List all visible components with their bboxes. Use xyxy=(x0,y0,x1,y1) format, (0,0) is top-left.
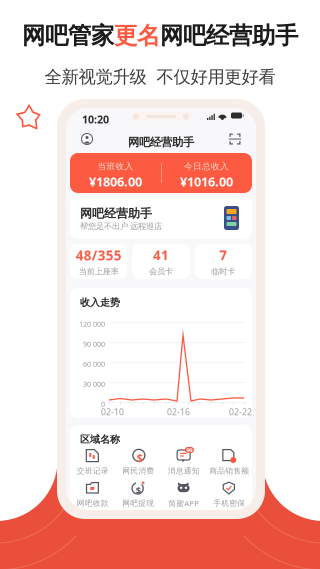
button[interactable]: $ xyxy=(115,449,161,476)
staticText: 区域名称 xyxy=(80,433,120,446)
staticText: 网吧提现 xyxy=(122,498,154,508)
button[interactable]: 商品销售额 xyxy=(206,449,252,476)
staticText: 10:20 xyxy=(82,112,109,126)
button[interactable]: 账户 xyxy=(74,126,100,152)
staticText: 简蜜APP xyxy=(168,498,199,508)
staticText: 当前上座率 xyxy=(79,266,119,277)
staticText: ¥1806.00 xyxy=(89,173,142,190)
button[interactable]: 网吧收款 xyxy=(70,481,115,508)
staticText: 7 xyxy=(219,246,227,264)
button[interactable]: 7 xyxy=(195,244,252,279)
button[interactable]: 交班记录 xyxy=(70,449,115,476)
staticText: $ xyxy=(136,484,141,497)
staticText: 更名 xyxy=(114,21,160,50)
staticText: 手机密保 xyxy=(213,498,245,508)
staticText: 网民消费 xyxy=(122,466,154,476)
button[interactable]: 手机密保 xyxy=(206,481,252,508)
staticText: 帮您足不出户 远程巡店 xyxy=(80,221,162,231)
staticText: 02-16 xyxy=(167,406,190,418)
button[interactable]: 简蜜APP xyxy=(161,481,206,508)
button[interactable]: 99 xyxy=(161,449,206,476)
staticText: 网吧经营助手 xyxy=(128,135,194,149)
staticText: 48/355 xyxy=(76,246,122,264)
staticText: 网吧管家 xyxy=(22,21,114,50)
staticText: 60 000 xyxy=(83,359,105,369)
staticText: 02-22 xyxy=(229,406,252,418)
staticText: 当班收入 xyxy=(97,161,133,172)
staticText: 30 000 xyxy=(83,379,105,389)
staticText: 120 000 xyxy=(79,319,105,329)
staticText: 网吧经营助手 xyxy=(80,206,152,221)
staticText: 0 xyxy=(101,399,105,409)
staticText: 消息通知 xyxy=(168,466,200,476)
staticText: 今日总收入 xyxy=(184,161,229,172)
staticText: 临时卡 xyxy=(211,266,235,277)
staticText: 41 xyxy=(153,246,169,264)
button[interactable]: 扫一扫 xyxy=(222,126,248,152)
staticText: 全新视觉升级 不仅好用更好看 xyxy=(44,66,275,88)
staticText: 商品销售额 xyxy=(209,466,249,476)
button[interactable]: $ xyxy=(115,481,161,508)
staticText: 收入走势 xyxy=(80,296,120,309)
staticText: 02-10 xyxy=(101,406,124,418)
staticText: 网吧经营助手 xyxy=(160,21,298,50)
staticText: 网吧收款 xyxy=(77,498,109,508)
button[interactable]: 41 xyxy=(132,244,190,279)
staticText: 交班记录 xyxy=(77,466,109,476)
staticText: ¥1016.00 xyxy=(180,173,233,190)
staticText: $ xyxy=(137,450,143,465)
staticText: 99 xyxy=(186,446,192,454)
button[interactable]: 48/355 xyxy=(70,244,127,279)
staticText: 90 000 xyxy=(83,339,105,349)
staticText: 会员卡 xyxy=(149,266,173,277)
